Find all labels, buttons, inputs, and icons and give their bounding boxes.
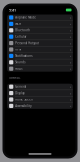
staticText: › — [70, 84, 71, 89]
staticText: Cellular — [15, 35, 26, 38]
button[interactable]: Focus — [7, 66, 73, 72]
staticText: Personal Hotspot — [15, 41, 39, 45]
button[interactable]: VPN — [7, 46, 73, 53]
staticText: Wi-Fi — [15, 22, 21, 26]
staticText: › — [70, 15, 71, 20]
button[interactable]: Display — [7, 90, 73, 96]
staticText: › — [70, 21, 71, 26]
button[interactable]: Bluetooth — [7, 27, 73, 34]
button[interactable]: Personal Hotspot — [7, 40, 73, 46]
button[interactable]: General — [7, 84, 73, 90]
staticText: › — [70, 40, 71, 46]
staticText: › — [70, 60, 71, 65]
button[interactable]: Accessibility — [7, 103, 73, 109]
staticText: Home Screen — [15, 98, 33, 101]
staticText: Sounds — [15, 60, 25, 64]
staticText: Notifications — [15, 54, 32, 58]
button[interactable]: Sounds — [7, 59, 73, 66]
button[interactable]: Notifications — [7, 53, 73, 59]
staticText: › — [70, 66, 71, 71]
staticText: General — [15, 85, 26, 88]
button[interactable]: Cellular — [7, 34, 73, 40]
staticText: › — [70, 97, 71, 102]
staticText: GENERAL — [9, 76, 20, 79]
button[interactable]: Airplane Mode — [7, 14, 73, 21]
staticText: VPN — [15, 48, 21, 51]
button[interactable]: Home Screen — [7, 96, 73, 103]
staticText: Bluetooth — [15, 28, 30, 32]
staticText: › — [70, 103, 71, 108]
staticText: Accessibility — [15, 104, 31, 108]
staticText: Focus — [15, 67, 22, 70]
staticText: › — [70, 90, 71, 96]
staticText: 9:41 — [9, 7, 16, 13]
staticText: › — [70, 34, 71, 39]
button[interactable]: Wi-Fi — [7, 21, 73, 27]
staticText: Airplane Mode — [15, 16, 36, 19]
staticText: Display — [15, 91, 24, 95]
staticText: › — [70, 53, 71, 58]
staticText: › — [70, 47, 71, 52]
staticText: › — [70, 28, 71, 33]
